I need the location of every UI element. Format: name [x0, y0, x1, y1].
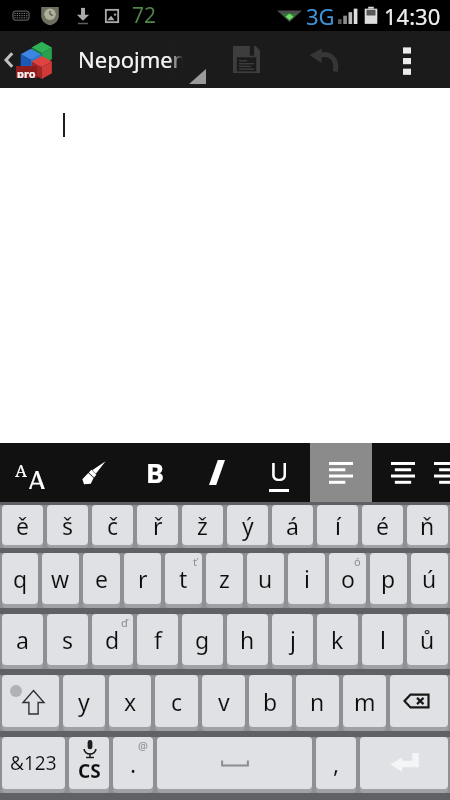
staticText: pro [17, 66, 36, 78]
staticText: j [290, 624, 296, 655]
staticText: ť [193, 554, 197, 569]
button[interactable] [2, 675, 59, 731]
staticText: . [130, 748, 137, 779]
staticText: U [270, 454, 289, 488]
staticText: é [376, 510, 389, 541]
staticText: l [380, 624, 386, 655]
staticText: ý [242, 510, 254, 541]
staticText: ú [422, 563, 437, 594]
staticText: z [219, 563, 230, 594]
button[interactable]: &123 [2, 737, 65, 793]
staticText: x [124, 686, 137, 717]
button[interactable]: u [247, 553, 284, 608]
button[interactable]: More options [364, 31, 450, 88]
button[interactable]: Align right [434, 443, 450, 502]
button[interactable]: d [92, 614, 133, 669]
staticText: u [258, 563, 273, 594]
button[interactable]: j [272, 614, 313, 669]
button[interactable]: é [362, 505, 403, 548]
staticText: , [333, 748, 340, 779]
button[interactable]: y [63, 675, 105, 731]
button[interactable]: Bold [124, 443, 186, 502]
button[interactable]: Text color [62, 443, 124, 502]
button[interactable]: b [249, 675, 292, 731]
staticText: f [154, 624, 162, 655]
button[interactable]: l [362, 614, 403, 669]
staticText: ě [16, 510, 29, 541]
staticText: á [286, 510, 299, 541]
button[interactable]: i [288, 553, 325, 608]
staticText: &123 [10, 750, 57, 776]
button[interactable] [157, 737, 312, 793]
button[interactable]: , [316, 737, 356, 793]
staticText: p [381, 563, 396, 594]
staticText: h [240, 624, 255, 655]
button[interactable]: r [124, 553, 161, 608]
button[interactable]: c [155, 675, 198, 731]
button[interactable]: ž [182, 505, 223, 548]
button[interactable]: z [206, 553, 243, 608]
staticText: y [78, 686, 90, 717]
button[interactable]: Underline [248, 443, 310, 502]
staticText: q [13, 563, 28, 594]
staticText: í [335, 510, 341, 541]
button[interactable]: h [227, 614, 268, 669]
staticText: w [51, 563, 70, 594]
button[interactable]: . [113, 737, 153, 793]
button[interactable]: Save [209, 31, 283, 88]
button[interactable]: f [137, 614, 178, 669]
button[interactable]: ř [137, 505, 178, 548]
button[interactable]: ý [227, 505, 268, 548]
staticText: c [171, 686, 183, 717]
button[interactable]: q [2, 553, 38, 608]
button[interactable]: Italic [186, 443, 248, 502]
button[interactable]: m [343, 675, 386, 731]
button[interactable]: g [182, 614, 223, 669]
button[interactable]: í [317, 505, 358, 548]
staticText: @ [138, 738, 148, 753]
button[interactable]: k [317, 614, 358, 669]
button[interactable]: e [83, 553, 120, 608]
button[interactable]: x [109, 675, 151, 731]
staticText: k [331, 624, 344, 655]
button[interactable]: t [165, 553, 202, 608]
button[interactable]: CS [69, 737, 109, 793]
staticText: ó [354, 554, 361, 569]
staticText: ž [197, 510, 208, 541]
button[interactable]: ě [2, 505, 43, 548]
button[interactable]: Font size [0, 443, 62, 502]
button[interactable]: š [47, 505, 88, 548]
staticText: a [16, 624, 29, 655]
staticText: d [105, 624, 120, 655]
button[interactable]: n [296, 675, 339, 731]
button[interactable]: á [272, 505, 313, 548]
button[interactable]: s [47, 614, 88, 669]
button[interactable]: Align center [372, 443, 434, 502]
staticText: ď [121, 615, 128, 630]
staticText: CS [78, 758, 101, 784]
button[interactable]: ň [407, 505, 448, 548]
staticText: A [15, 459, 27, 482]
staticText: Nepojmeno [78, 44, 183, 74]
button[interactable]: v [202, 675, 245, 731]
button[interactable] [360, 737, 448, 793]
button[interactable]: p [370, 553, 407, 608]
button[interactable]: pro [0, 31, 183, 88]
button[interactable]: w [42, 553, 79, 608]
staticText: i [304, 563, 310, 594]
staticText: č [107, 510, 119, 541]
staticText: 3G [306, 1, 335, 31]
button[interactable]: ú [411, 553, 448, 608]
staticText: v [218, 686, 230, 717]
button[interactable] [390, 675, 448, 731]
staticText: š [62, 510, 74, 541]
button[interactable]: ů [407, 614, 448, 669]
button[interactable]: č [92, 505, 133, 548]
button[interactable]: o [329, 553, 366, 608]
staticText: e [95, 563, 108, 594]
button[interactable]: a [2, 614, 43, 669]
button[interactable]: Align left [310, 443, 372, 502]
staticText: s [62, 624, 74, 655]
button[interactable]: Undo [283, 31, 364, 88]
staticText: A [27, 461, 47, 489]
